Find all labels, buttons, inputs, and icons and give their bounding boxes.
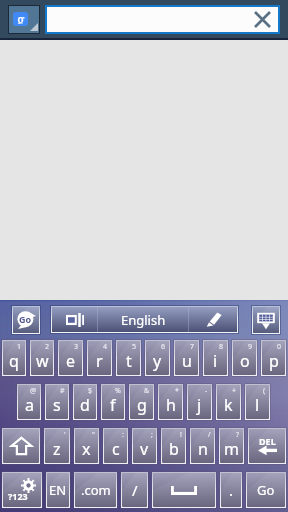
staticText: w — [36, 350, 49, 372]
staticText: * — [175, 386, 179, 396]
button[interactable]: h — [156, 380, 185, 424]
button[interactable]: .com — [72, 468, 119, 512]
button[interactable]: i — [201, 336, 230, 380]
staticText: 1 — [17, 342, 22, 352]
button[interactable]: g — [127, 380, 156, 424]
staticText: y — [153, 350, 162, 372]
staticText: b — [169, 438, 179, 460]
button[interactable]: Clear query — [47, 7, 278, 32]
staticText: z — [53, 438, 61, 460]
button[interactable]: w — [28, 336, 56, 380]
staticText: 3 — [74, 342, 79, 352]
button[interactable]: English — [98, 307, 188, 332]
staticText: q — [9, 350, 19, 372]
button[interactable]: / — [119, 468, 150, 512]
staticText: n — [198, 438, 208, 460]
staticText: 6 — [161, 342, 166, 352]
button[interactable]: p — [259, 336, 288, 380]
button[interactable]: t — [114, 336, 143, 380]
staticText: & — [144, 386, 150, 396]
staticText: - — [205, 386, 208, 396]
staticText: . — [229, 480, 234, 500]
button[interactable]: Voice go — [13, 307, 39, 333]
staticText: 9 — [248, 342, 253, 352]
staticText: c — [112, 438, 120, 460]
staticText: $ — [88, 386, 93, 396]
staticText: ?123 — [8, 490, 28, 502]
button[interactable]: Switch input method — [52, 307, 97, 332]
staticText: ! — [180, 430, 182, 440]
button[interactable]: k — [214, 380, 243, 424]
staticText: % — [115, 386, 121, 396]
staticText: ? — [236, 430, 240, 440]
staticText: j — [197, 394, 202, 416]
staticText: p — [269, 350, 279, 372]
staticText: 7 — [190, 342, 195, 352]
staticText: ( — [263, 386, 266, 396]
button[interactable]: c — [101, 424, 130, 468]
staticText: h — [166, 394, 176, 416]
button[interactable]: r — [85, 336, 114, 380]
staticText: u — [182, 350, 192, 372]
staticText: + — [232, 386, 237, 396]
staticText: s — [53, 394, 61, 416]
staticText: l — [255, 394, 260, 416]
staticText: 2 — [45, 342, 50, 352]
button[interactable]: j — [185, 380, 214, 424]
staticText: # — [60, 386, 65, 396]
staticText: / — [132, 480, 138, 500]
button[interactable]: q — [0, 336, 28, 380]
button[interactable]: l — [243, 380, 272, 424]
staticText: @ — [30, 386, 37, 396]
staticText: ; — [151, 430, 153, 440]
button[interactable]: e — [56, 336, 85, 380]
staticText: Go — [257, 481, 275, 499]
button[interactable]: d — [71, 380, 99, 424]
button[interactable]: Handwriting — [189, 307, 237, 332]
button[interactable]: Delete — [246, 424, 288, 468]
button[interactable]: f — [99, 380, 127, 424]
staticText: 4 — [103, 342, 108, 352]
staticText: r — [96, 350, 103, 372]
button[interactable]: Search engine Google — [9, 6, 39, 33]
button[interactable]: o — [230, 336, 259, 380]
staticText: g — [17, 12, 25, 24]
staticText: " — [92, 430, 95, 440]
staticText: g — [137, 394, 147, 416]
staticText: d — [80, 394, 90, 416]
button[interactable]: m — [217, 424, 246, 468]
staticText: a — [25, 394, 34, 416]
button[interactable]: Space — [150, 468, 218, 512]
button[interactable]: z — [42, 424, 72, 468]
button[interactable]: n — [188, 424, 217, 468]
button[interactable]: u — [172, 336, 201, 380]
staticText: ' — [64, 430, 66, 440]
button[interactable]: a — [15, 380, 43, 424]
button[interactable]: x — [72, 424, 101, 468]
button[interactable]: Clear query — [249, 7, 275, 32]
button[interactable]: v — [130, 424, 159, 468]
staticText: 0 — [277, 342, 282, 352]
staticText: i — [213, 350, 218, 372]
staticText: 8 — [219, 342, 224, 352]
staticText: x — [82, 438, 91, 460]
staticText: e — [66, 350, 76, 372]
button[interactable]: b — [159, 424, 188, 468]
staticText: k — [224, 394, 233, 416]
staticText: o — [240, 350, 250, 372]
button[interactable]: Go — [244, 468, 288, 512]
button[interactable]: Shift — [0, 424, 42, 468]
button[interactable]: s — [43, 380, 71, 424]
staticText: .com — [81, 481, 111, 499]
staticText: v — [140, 438, 149, 460]
staticText: : — [122, 430, 124, 440]
button[interactable]: Symbols — [0, 468, 44, 512]
staticText: 5 — [132, 342, 137, 352]
button[interactable]: . — [218, 468, 244, 512]
staticText: f — [110, 394, 116, 416]
button[interactable]: EN — [44, 468, 72, 512]
button[interactable]: y — [143, 336, 172, 380]
button[interactable]: Hide keyboard — [253, 307, 279, 333]
staticText: m — [224, 438, 239, 460]
staticText: t — [126, 350, 132, 372]
